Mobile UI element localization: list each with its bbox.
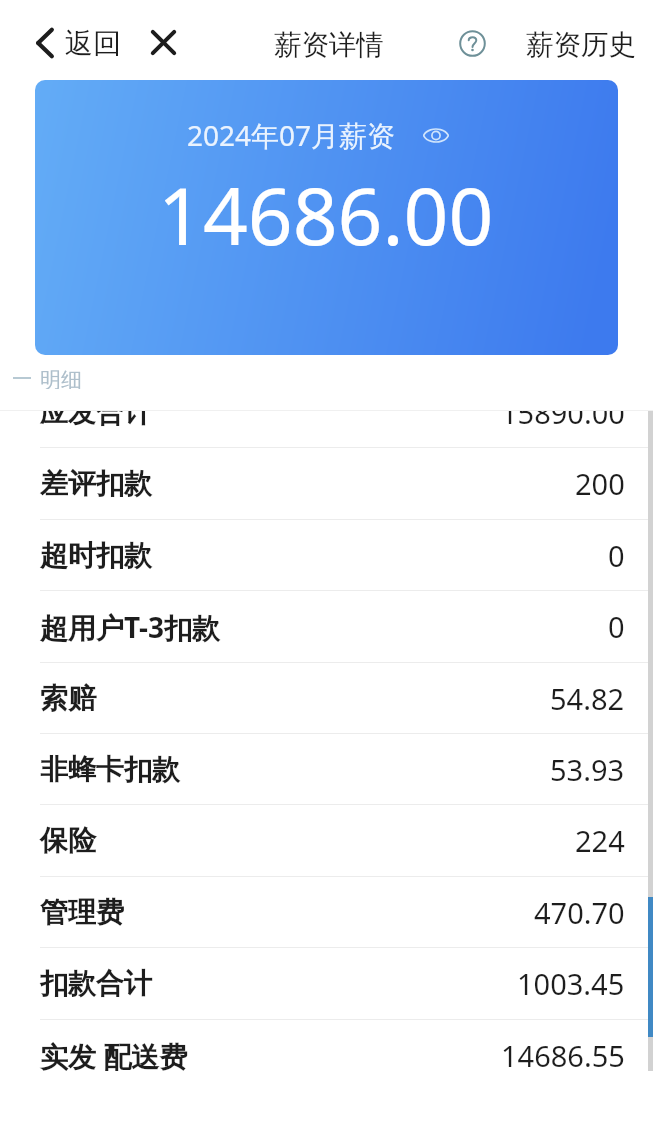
staticText: 保险 <box>40 823 96 858</box>
staticText: 200 <box>575 464 625 503</box>
button[interactable]: 保险 <box>0 805 653 876</box>
button[interactable]: 非蜂卡扣款 <box>0 734 653 805</box>
staticText: 14686.00 <box>158 161 494 268</box>
staticText: 470.70 <box>534 893 625 932</box>
button[interactable]: 差评扣款 <box>0 448 653 519</box>
staticText: 返回 <box>65 26 121 61</box>
button[interactable]: 超用户T-3扣款 <box>0 591 653 662</box>
staticText: 管理费 <box>40 895 124 930</box>
button[interactable]: 超时扣款 <box>0 520 653 591</box>
staticText: 超时扣款 <box>40 538 152 573</box>
button[interactable]: 实发 配送费 <box>0 1020 653 1091</box>
staticText: 1003.45 <box>517 964 625 1003</box>
staticText: 明细 <box>40 367 82 389</box>
staticText: 53.93 <box>550 750 625 789</box>
button[interactable]: 索赔 <box>0 663 653 734</box>
staticText: 15890.00 <box>501 393 625 432</box>
staticText: 14686.55 <box>501 1036 625 1075</box>
staticText: 非蜂卡扣款 <box>40 752 180 787</box>
button[interactable]: 扣款合计 <box>0 948 653 1019</box>
staticText: 54.82 <box>550 679 625 718</box>
button[interactable]: 管理费 <box>0 877 653 948</box>
staticText: 扣款合计 <box>40 966 152 1001</box>
staticText: 实发 配送费 <box>40 1037 188 1075</box>
button[interactable]: 2024年07月薪资 <box>35 80 618 355</box>
staticText: 索赔 <box>40 681 96 716</box>
staticText: 0 <box>608 536 625 575</box>
button[interactable]: Help <box>452 23 492 63</box>
staticText: 差评扣款 <box>40 466 152 501</box>
staticText: 2024年07月薪资 <box>187 116 396 154</box>
button[interactable]: 薪资历史 <box>522 24 640 67</box>
staticText: 0 <box>608 607 625 646</box>
staticText: 应发合计 <box>40 395 152 430</box>
staticText: 薪资历史 <box>526 28 636 63</box>
button[interactable]: 返回 <box>27 17 127 69</box>
staticText: 超用户T-3扣款 <box>40 608 221 646</box>
staticText: 薪资详情 <box>274 28 384 63</box>
staticText: 224 <box>575 821 625 860</box>
button[interactable]: Toggle salary visibility <box>421 120 451 150</box>
button[interactable]: Close <box>143 22 183 62</box>
button[interactable]: 应发合计 <box>0 377 653 448</box>
